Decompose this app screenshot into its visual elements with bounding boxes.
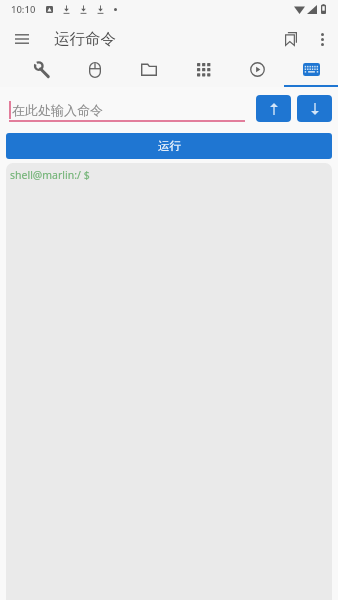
staticText: 运行命令 bbox=[54, 29, 116, 49]
staticText: shell@marlin:/ $ bbox=[10, 168, 90, 182]
button[interactable]: Files bbox=[122, 58, 176, 87]
button[interactable]: 在此处输入命令 bbox=[9, 95, 245, 122]
button[interactable]: Tools bbox=[14, 58, 68, 87]
button[interactable]: Next command bbox=[297, 95, 332, 122]
button[interactable]: Navigation menu bbox=[0, 20, 43, 58]
button[interactable]: Previous command bbox=[256, 95, 291, 122]
staticText: 运行 bbox=[158, 139, 181, 153]
button[interactable]: More options bbox=[308, 20, 336, 58]
staticText: 在此处输入命令 bbox=[12, 102, 103, 118]
button[interactable]: Media bbox=[230, 58, 284, 87]
button[interactable]: Terminal bbox=[284, 58, 338, 87]
button[interactable]: Bookmarks bbox=[274, 20, 308, 58]
button[interactable]: Apps bbox=[176, 58, 230, 87]
button[interactable]: 运行 bbox=[6, 133, 332, 159]
staticText: 10:10 bbox=[11, 3, 36, 16]
button[interactable]: Mouse bbox=[68, 58, 122, 87]
